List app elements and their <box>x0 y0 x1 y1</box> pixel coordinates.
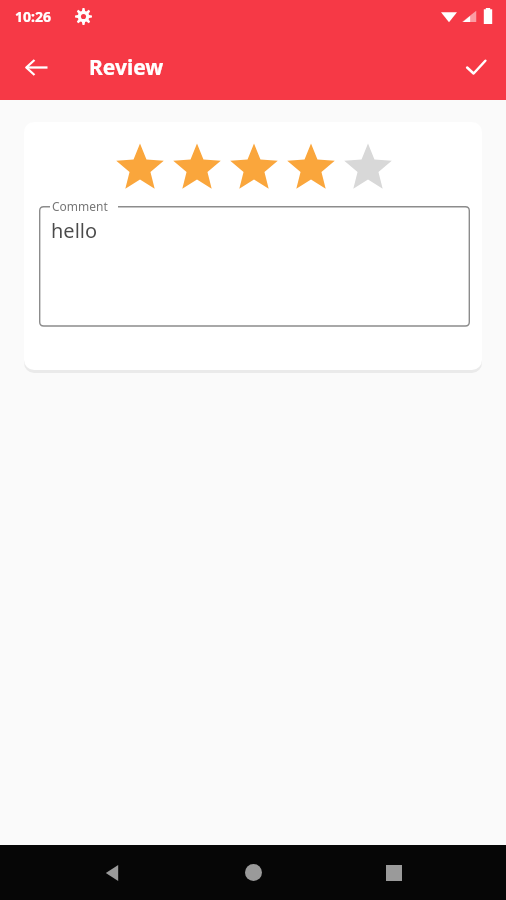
button[interactable]: Rate 3 star <box>225 138 282 195</box>
button[interactable]: Comment <box>39 197 470 336</box>
staticText: 10:26 <box>15 7 51 26</box>
button[interactable]: Navigate up <box>12 43 60 91</box>
button[interactable]: Back <box>85 845 141 900</box>
button[interactable]: Save review <box>452 43 500 91</box>
button[interactable]: Home <box>225 845 281 900</box>
button[interactable]: Recent apps <box>366 845 422 900</box>
staticText: Comment <box>52 198 108 214</box>
button[interactable]: Rate 5 star <box>339 138 396 195</box>
staticText: Review <box>89 53 164 82</box>
staticText: hello <box>51 217 98 244</box>
button[interactable]: Rate 1 star <box>111 138 168 195</box>
button[interactable]: Rate 4 star <box>282 138 339 195</box>
button[interactable]: Rate 2 star <box>168 138 225 195</box>
